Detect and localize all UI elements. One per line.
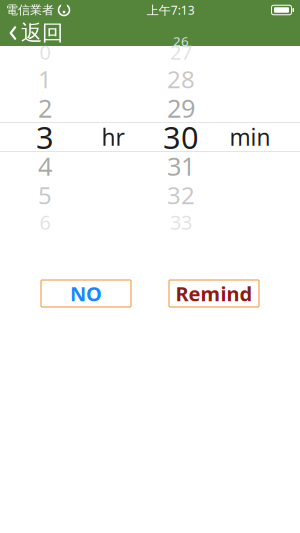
staticText: NO <box>70 280 102 307</box>
button[interactable]: Remind <box>169 280 259 307</box>
staticText: 4 <box>38 149 52 183</box>
staticText: 31 <box>167 149 195 183</box>
staticText: 33 <box>170 209 192 235</box>
staticText: 26 <box>173 32 189 50</box>
staticText: 3 <box>36 117 54 157</box>
staticText: 5 <box>38 179 52 211</box>
button[interactable]: NO <box>41 280 131 307</box>
staticText: hr <box>101 122 124 152</box>
staticText: 6 <box>39 209 50 235</box>
staticText: 27 <box>170 39 192 65</box>
staticText: min <box>229 122 270 152</box>
staticText: 29 <box>167 91 195 125</box>
staticText: 0 <box>39 39 50 65</box>
staticText: 2 <box>38 91 52 125</box>
staticText: 32 <box>167 179 195 211</box>
staticText: 返回 <box>21 20 63 46</box>
staticText: 30 <box>163 117 199 157</box>
button[interactable]: 返回 <box>0 20 73 46</box>
staticText: 1 <box>38 63 52 95</box>
staticText: 電信業者 <box>6 3 54 17</box>
staticText: Remind <box>175 280 252 307</box>
staticText: 上午7:13 <box>147 2 195 18</box>
staticText: 28 <box>167 63 195 95</box>
